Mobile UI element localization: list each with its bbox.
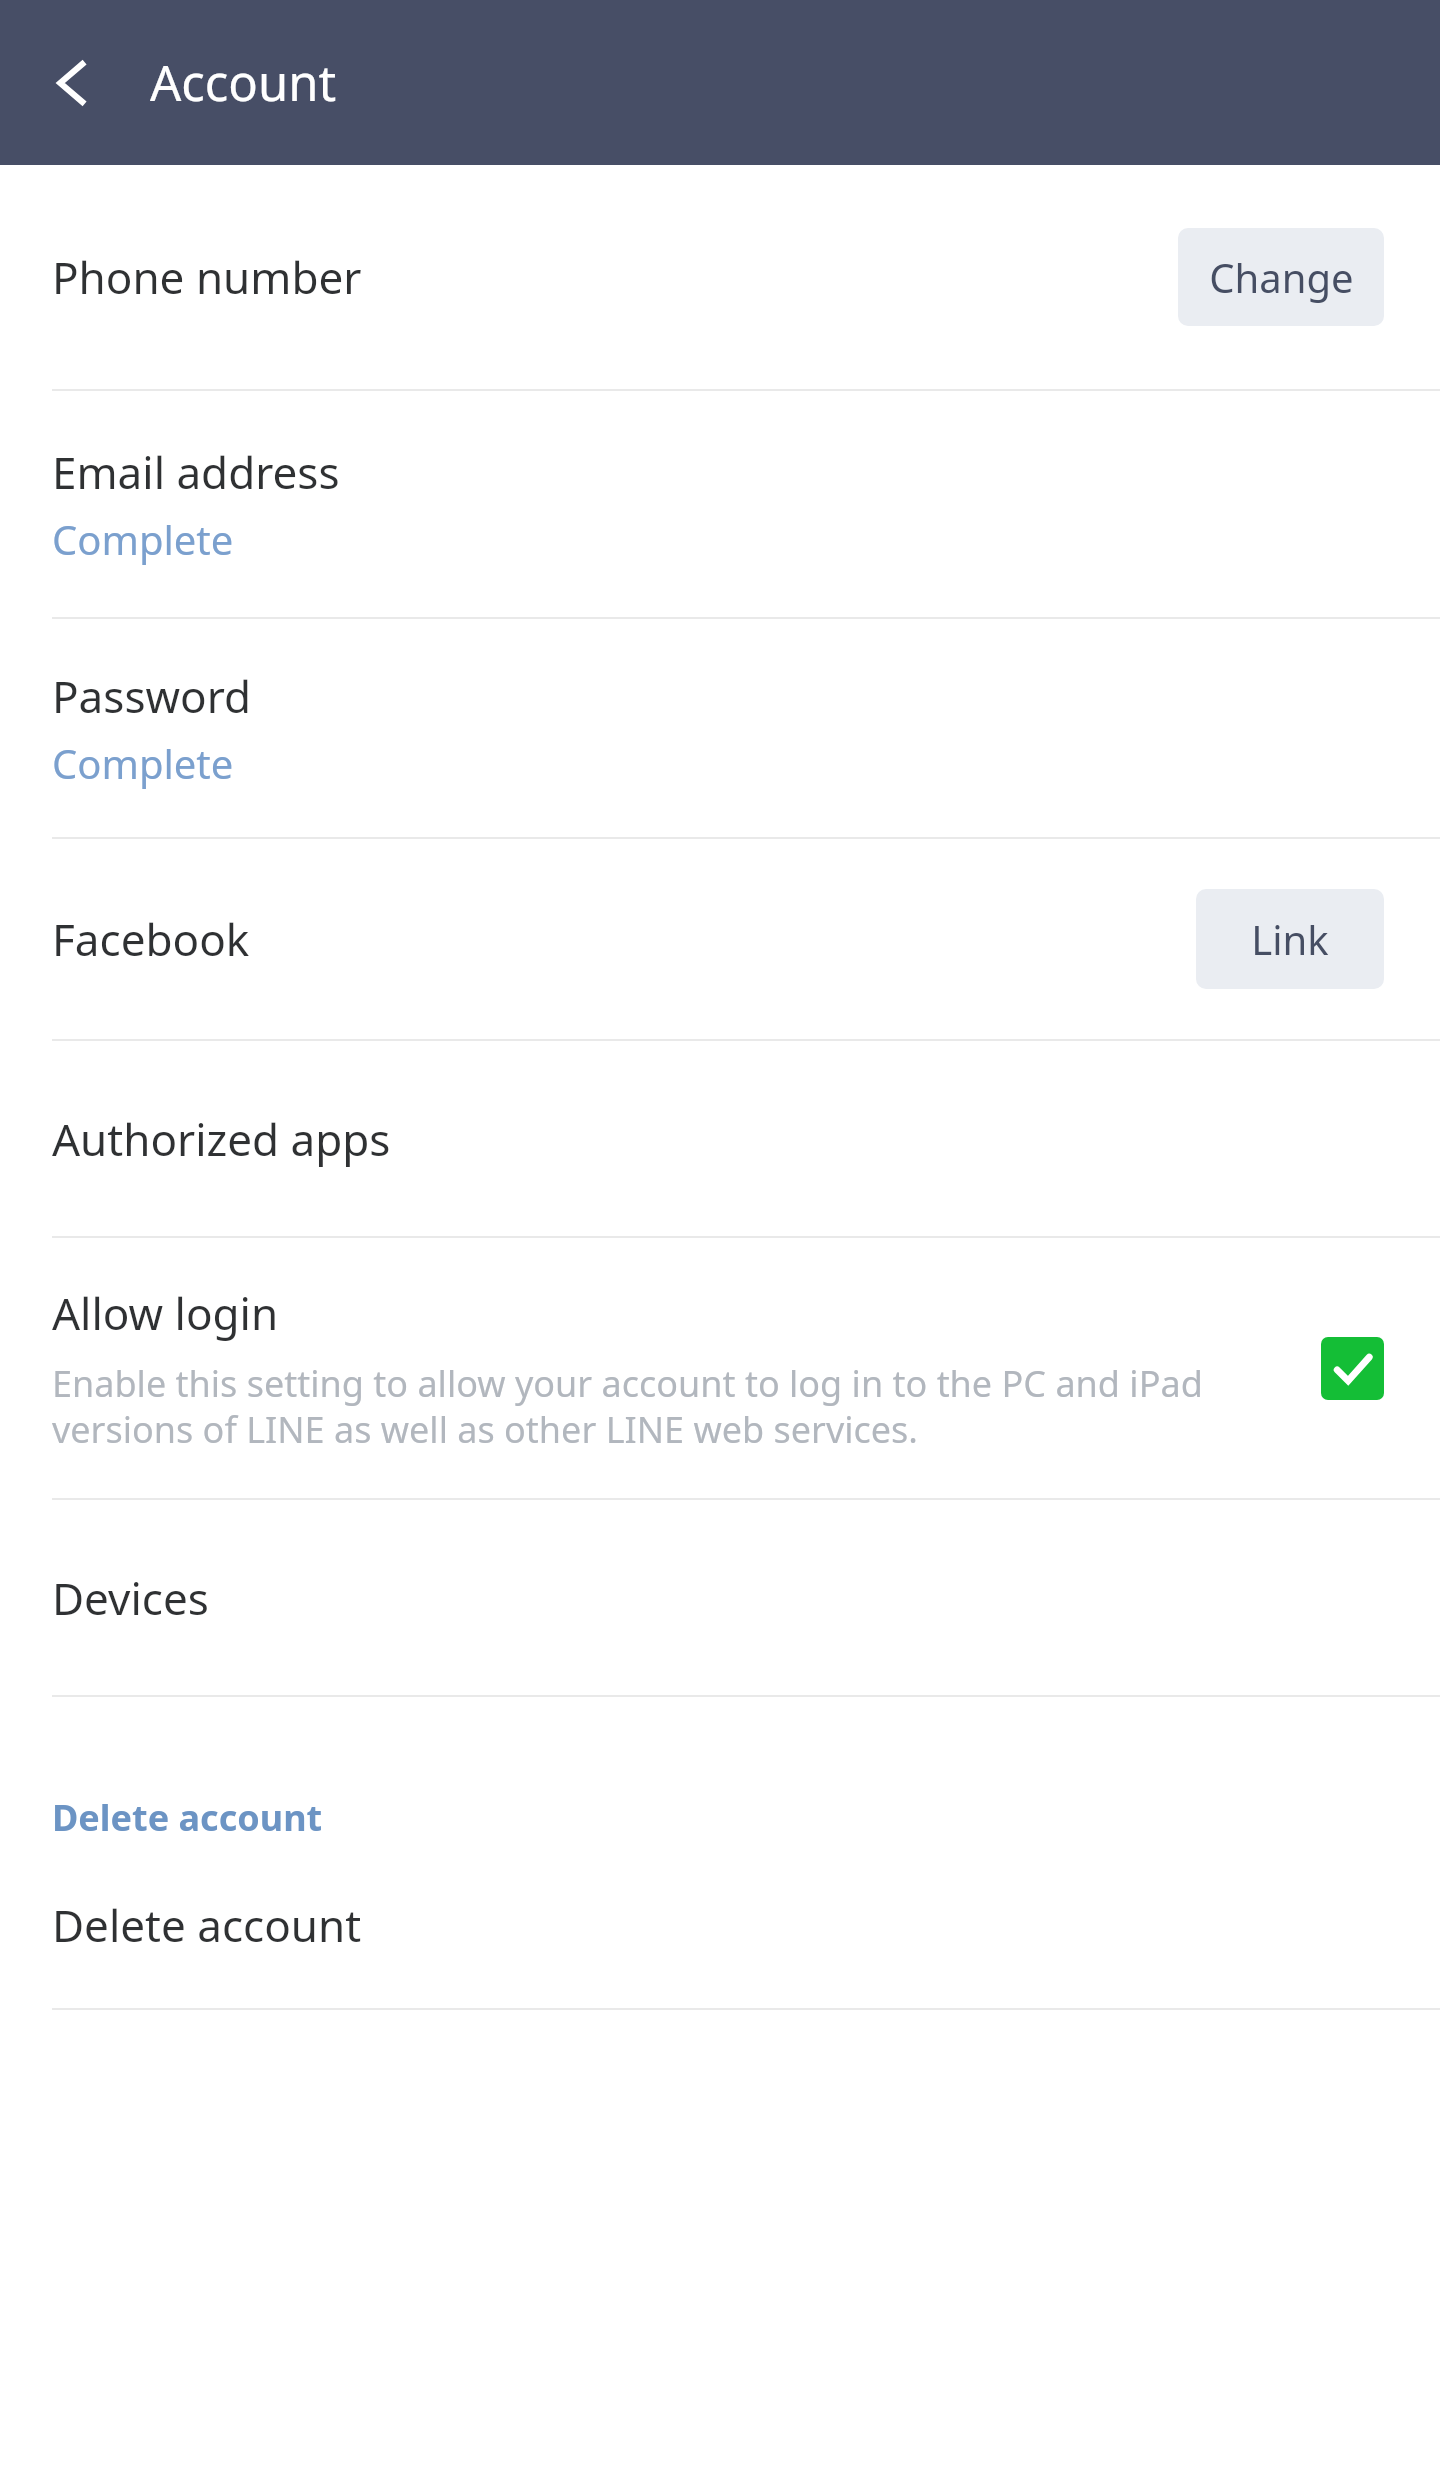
staticText: Delete account: [52, 1793, 323, 1842]
staticText: Change: [1209, 250, 1354, 304]
button[interactable]: Delete account: [0, 1697, 1440, 1842]
staticText: Email address: [52, 442, 340, 502]
staticText: Devices: [52, 1568, 209, 1628]
button[interactable]: Allow login enabled: [1321, 1337, 1384, 1400]
staticText: Password: [52, 666, 252, 726]
staticText: Account: [150, 49, 337, 116]
button[interactable]: Facebook: [0, 839, 1440, 1039]
button[interactable]: Devices: [0, 1500, 1440, 1695]
button[interactable]: Email address: [0, 391, 1440, 617]
button[interactable]: Link: [1196, 889, 1384, 989]
button[interactable]: Phone number: [0, 165, 1440, 389]
staticText: Authorized apps: [52, 1109, 391, 1169]
button[interactable]: Authorized apps: [0, 1041, 1440, 1236]
staticText: Allow login: [52, 1283, 279, 1343]
button[interactable]: Allow login: [0, 1238, 1440, 1498]
staticText: Phone number: [52, 247, 362, 307]
staticText: Complete: [52, 512, 234, 566]
button[interactable]: Delete account: [0, 1842, 1440, 2008]
button[interactable]: Back: [14, 24, 132, 142]
button[interactable]: Password: [0, 619, 1440, 837]
staticText: Enable this setting to allow your accoun…: [52, 1359, 1297, 1454]
staticText: Facebook: [52, 909, 250, 969]
staticText: Delete account: [52, 1895, 362, 1955]
staticText: Complete: [52, 736, 234, 790]
staticText: Link: [1251, 912, 1329, 966]
button[interactable]: Change: [1178, 228, 1384, 326]
